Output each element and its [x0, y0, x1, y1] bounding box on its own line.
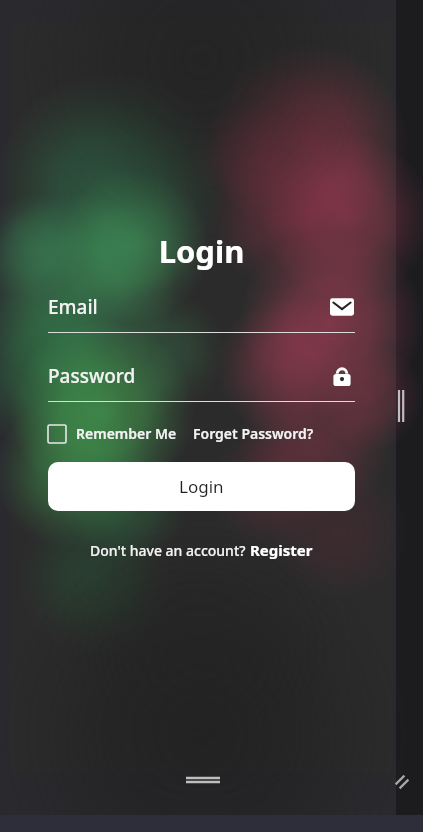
- staticText: Login: [179, 475, 224, 498]
- button[interactable]: Forget Password?: [193, 422, 314, 445]
- staticText: Forget Password?: [193, 424, 314, 443]
- button[interactable]: Remember Me: [48, 422, 177, 445]
- staticText: Password: [48, 363, 136, 389]
- button[interactable]: Email: [329, 294, 355, 320]
- staticText: Don't have an account?: [90, 541, 250, 560]
- button[interactable]: Register: [250, 540, 313, 560]
- button[interactable]: Resize height: [186, 775, 220, 785]
- staticText: Email: [48, 294, 98, 320]
- button[interactable]: Resize: [392, 772, 412, 792]
- button[interactable]: Login: [48, 462, 355, 511]
- staticText: Remember Me: [76, 424, 177, 443]
- button[interactable]: Show password: [329, 363, 355, 389]
- button[interactable]: Resize width: [396, 390, 406, 422]
- staticText: Login: [11, 230, 392, 272]
- staticText: Register: [250, 540, 313, 560]
